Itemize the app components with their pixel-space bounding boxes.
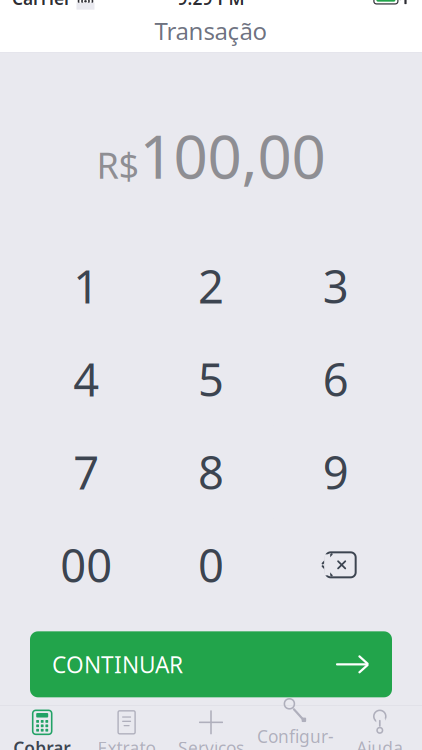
staticText: 00: [60, 535, 112, 595]
staticText: Serviços: [178, 736, 244, 750]
button[interactable]: 7: [24, 425, 149, 518]
staticText: 100,00: [139, 116, 325, 195]
button[interactable]: 1: [24, 239, 149, 332]
staticText: 8: [198, 442, 224, 502]
staticText: 0: [198, 535, 224, 595]
staticText: 6: [323, 349, 349, 409]
button[interactable]: 2: [149, 239, 273, 332]
button[interactable]: 3: [273, 239, 398, 332]
button[interactable]: 0: [149, 518, 273, 611]
staticText: Configurações: [257, 725, 334, 750]
button[interactable]: Configurações: [253, 706, 338, 750]
button[interactable]: 9: [273, 425, 398, 518]
button[interactable]: Delete: [273, 518, 398, 611]
button[interactable]: 00: [24, 518, 149, 611]
staticText: 2: [198, 256, 224, 316]
button[interactable]: Serviços: [169, 706, 253, 750]
button[interactable]: CONTINUAR: [30, 631, 392, 697]
staticText: 7: [73, 442, 99, 502]
staticText: Extrato: [98, 736, 156, 750]
staticText: 1: [73, 256, 99, 316]
staticText: Ajuda: [356, 736, 403, 750]
button[interactable]: Extrato: [84, 706, 169, 750]
staticText: 9: [323, 442, 349, 502]
button[interactable]: Cobrar: [0, 706, 84, 750]
staticText: Carrier: [12, 0, 72, 10]
button[interactable]: Ajuda: [338, 706, 422, 750]
staticText: Transação: [154, 15, 267, 47]
button[interactable]: 5: [149, 332, 273, 425]
staticText: 4: [73, 349, 99, 409]
staticText: CONTINUAR: [52, 649, 183, 679]
staticText: Cobrar: [13, 736, 71, 750]
button[interactable]: 8: [149, 425, 273, 518]
staticText: 5: [198, 349, 224, 409]
button[interactable]: 4: [24, 332, 149, 425]
button[interactable]: 6: [273, 332, 398, 425]
staticText: R$: [96, 141, 139, 189]
staticText: 9:29 PM: [177, 0, 244, 10]
staticText: 3: [323, 256, 349, 316]
